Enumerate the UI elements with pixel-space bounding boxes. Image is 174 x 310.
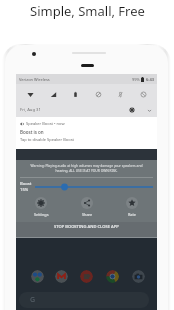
button[interactable]: Settings (21, 194, 61, 217)
button[interactable]: Flashlight (114, 88, 126, 100)
button[interactable]: Battery saver (69, 88, 81, 100)
button[interactable]: News (80, 270, 93, 283)
staticText: 15% (20, 187, 29, 193)
button[interactable]: Share (67, 194, 107, 217)
button[interactable]: STOP BOOSTING AND CLOSE APP (16, 222, 157, 237)
button[interactable]: Boost level (35, 182, 153, 192)
staticText: Warning: Playing audio at high volumes m… (25, 163, 148, 173)
staticText: Verizon Wireless (19, 77, 50, 82)
button[interactable]: Wi-Fi (24, 88, 36, 100)
button[interactable]: Rate (112, 194, 152, 217)
button[interactable]: Camera (132, 270, 145, 283)
staticText: 99% (132, 77, 140, 82)
staticText: STOP BOOSTING AND CLOSE APP (54, 224, 119, 230)
staticText: Share (82, 212, 93, 217)
staticText: Fri, Aug 31 (20, 107, 41, 113)
staticText: 6:43 (146, 77, 154, 82)
staticText: Simple, Small, Free (30, 2, 145, 20)
button[interactable]: Do not disturb (92, 88, 104, 100)
staticText: Tap to disable Speaker Boost (20, 137, 75, 142)
button[interactable]: Mobile signal (47, 88, 59, 100)
staticText: Boost (20, 181, 32, 187)
button[interactable]: Settings (127, 105, 137, 115)
staticText: G (30, 295, 36, 305)
staticText: Boost is on (20, 129, 44, 135)
staticText: Speaker Boost • now (26, 121, 65, 126)
staticText: Settings (34, 212, 49, 217)
button[interactable]: Speaker Boost • now (16, 117, 157, 149)
button[interactable]: Chrome (106, 270, 119, 283)
button[interactable]: Google folder (31, 270, 44, 283)
staticText: Rate (128, 212, 137, 217)
button[interactable]: Collapse (144, 105, 154, 115)
button[interactable]: Auto rotate (137, 88, 149, 100)
button[interactable]: Gmail (55, 270, 68, 283)
